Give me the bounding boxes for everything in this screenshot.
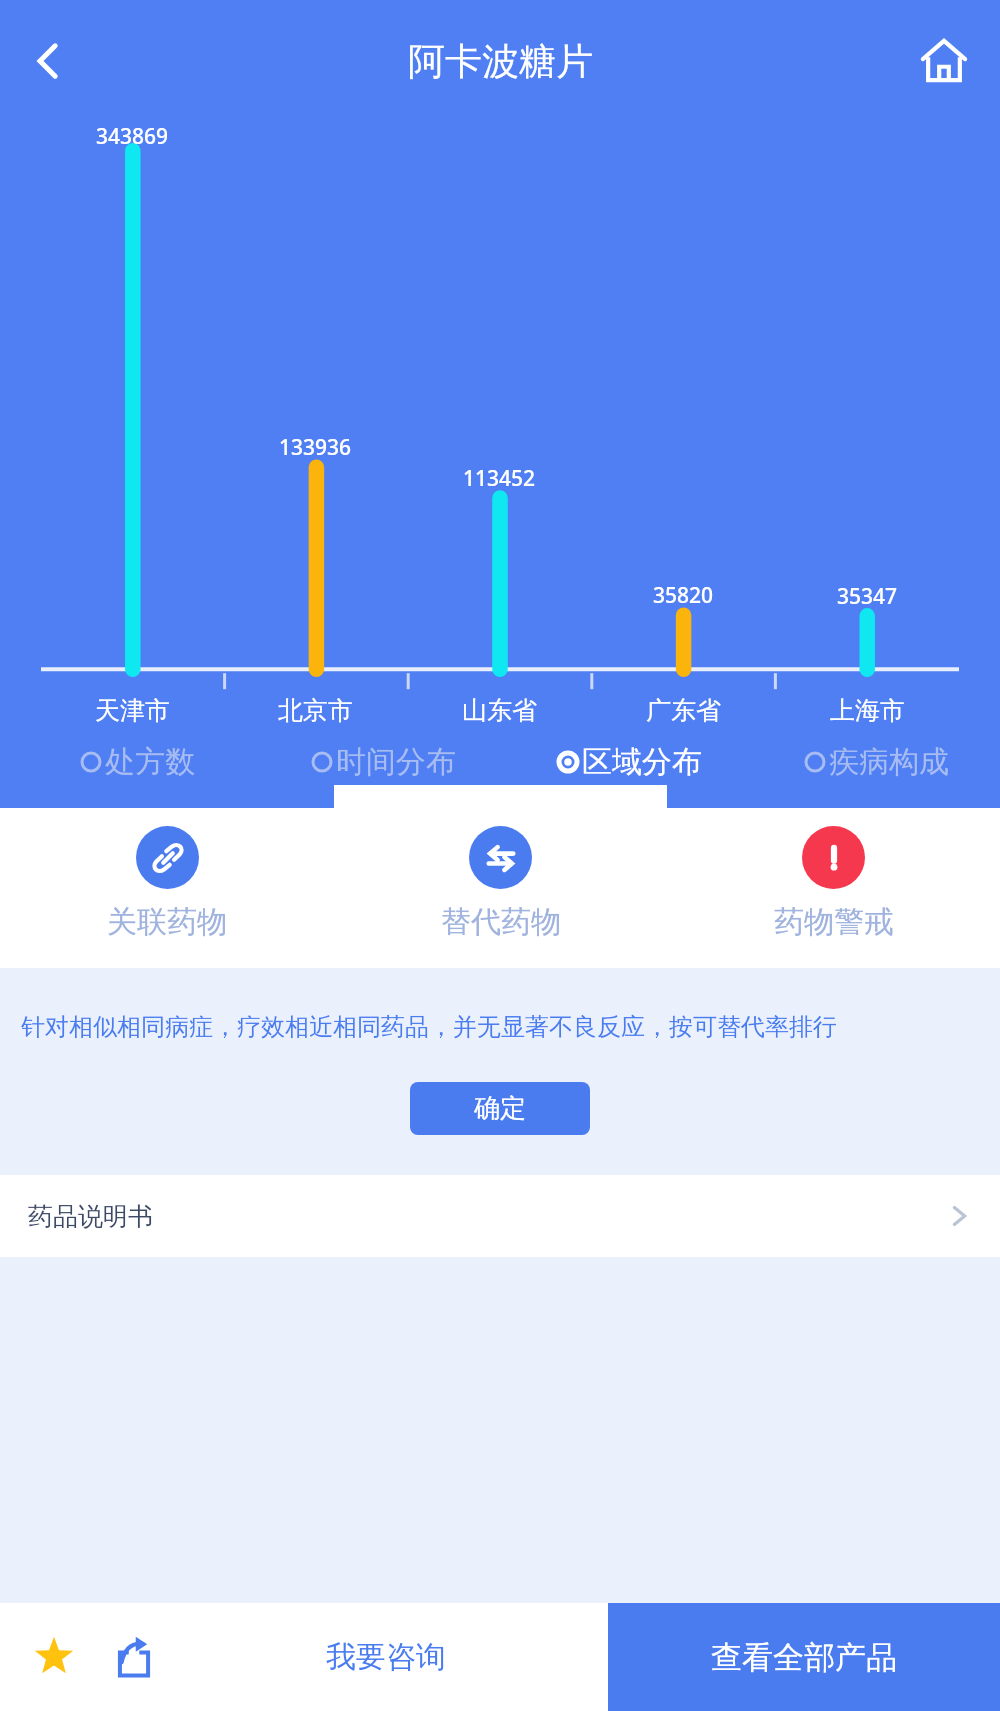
- button[interactable]: 时间分布: [260, 732, 506, 792]
- button[interactable]: Favorite: [24, 1627, 84, 1687]
- button[interactable]: 药物警戒: [667, 808, 1000, 968]
- staticText: 35820: [653, 581, 714, 610]
- staticText: 山东省: [462, 695, 537, 726]
- staticText: 疾病构成: [829, 743, 949, 781]
- button[interactable]: 查看全部产品: [608, 1603, 1000, 1711]
- staticText: 上海市: [830, 695, 905, 726]
- staticText: 关联药物: [107, 903, 227, 941]
- staticText: 时间分布: [336, 743, 456, 781]
- button[interactable]: 我要咨询: [164, 1603, 608, 1711]
- button[interactable]: 替代药物: [334, 808, 667, 968]
- staticText: 替代药物: [441, 903, 561, 941]
- staticText: 133936: [279, 433, 352, 462]
- button[interactable]: Share: [104, 1627, 164, 1687]
- button[interactable]: Home: [908, 25, 980, 97]
- staticText: 处方数: [105, 743, 195, 781]
- button[interactable]: 处方数: [14, 732, 260, 792]
- button[interactable]: 确定: [410, 1082, 590, 1135]
- staticText: 阿卡波糖片: [408, 38, 593, 85]
- button[interactable]: 疾病构成: [753, 732, 1000, 792]
- staticText: 针对相似相同病症，疗效相近相同药品，并无显著不良反应，按可替代率排行: [21, 1012, 837, 1042]
- staticText: 北京市: [278, 695, 353, 726]
- staticText: 343869: [96, 122, 169, 151]
- staticText: 广东省: [646, 695, 721, 726]
- staticText: 我要咨询: [326, 1638, 446, 1676]
- button[interactable]: 药品说明书: [0, 1175, 1000, 1257]
- staticText: 天津市: [95, 695, 170, 726]
- staticText: 查看全部产品: [711, 1638, 897, 1677]
- staticText: 113452: [463, 464, 536, 493]
- staticText: 药物警戒: [774, 903, 894, 941]
- button[interactable]: 关联药物: [0, 808, 334, 968]
- staticText: 区域分布: [582, 743, 702, 781]
- button[interactable]: 区域分布: [506, 732, 753, 792]
- staticText: 确定: [474, 1092, 526, 1125]
- staticText: 35347: [837, 582, 898, 611]
- button[interactable]: Back: [12, 25, 84, 97]
- staticText: 药品说明书: [28, 1201, 153, 1232]
